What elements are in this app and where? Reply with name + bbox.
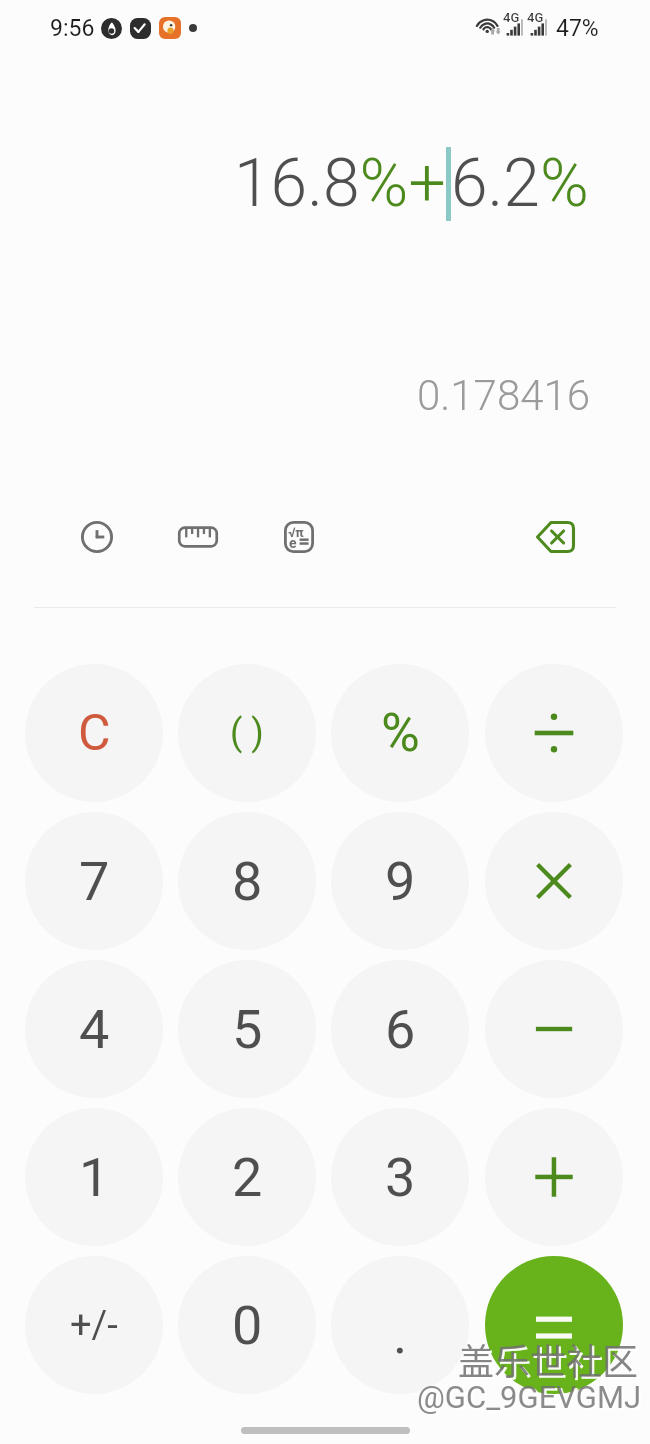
button[interactable]: Backspace xyxy=(523,505,587,569)
staticText: 16.8%+ xyxy=(234,145,446,222)
staticText: 5 xyxy=(232,998,263,1061)
staticText: √π xyxy=(288,525,304,540)
button[interactable]: Divide xyxy=(485,664,623,802)
button[interactable]: % xyxy=(331,664,469,802)
staticText: 盖乐世社区 xyxy=(458,1333,639,1385)
staticText: 6.2% xyxy=(451,145,589,222)
staticText: 9:56 xyxy=(50,15,95,42)
button[interactable]: 8 xyxy=(178,812,316,950)
staticText: @GC_9GEVGMJ xyxy=(417,1379,642,1415)
button[interactable]: 0 xyxy=(178,1256,316,1394)
staticText: e xyxy=(289,535,297,551)
staticText: 盖乐世社区 xyxy=(460,1335,641,1387)
staticText: 4 xyxy=(79,998,110,1061)
button[interactable]: 6 xyxy=(331,960,469,1098)
staticText: % xyxy=(381,702,420,764)
staticText: 3 xyxy=(385,1146,416,1209)
button[interactable]: ( ) xyxy=(178,664,316,802)
staticText: 1 xyxy=(79,1146,110,1209)
staticText: 47% xyxy=(556,15,599,42)
button[interactable]: +/- xyxy=(25,1256,163,1394)
button[interactable]: History xyxy=(63,505,127,569)
staticText: 2 xyxy=(232,1146,263,1209)
staticText: ( ) xyxy=(230,712,264,754)
button[interactable]: Add xyxy=(485,1108,623,1246)
staticText: 6 xyxy=(385,998,416,1061)
button[interactable]: Unit converter xyxy=(164,505,228,569)
staticText: @GC_9GEVGMJ xyxy=(419,1381,644,1417)
button[interactable]: Scientific calculator xyxy=(266,505,330,569)
staticText: 9 xyxy=(385,850,416,913)
button[interactable]: 2 xyxy=(178,1108,316,1246)
staticText: 0 xyxy=(232,1294,263,1357)
button[interactable]: 3 xyxy=(331,1108,469,1246)
button[interactable]: 1 xyxy=(25,1108,163,1246)
button[interactable]: Multiply xyxy=(485,812,623,950)
staticText: . xyxy=(393,1303,408,1366)
staticText: 8 xyxy=(232,850,263,913)
staticText: 0.178416 xyxy=(417,371,591,420)
staticText: 4G xyxy=(527,10,544,25)
button[interactable]: Equals xyxy=(485,1256,623,1394)
button[interactable]: Subtract xyxy=(485,960,623,1098)
staticText: C xyxy=(78,704,111,763)
button[interactable]: 5 xyxy=(178,960,316,1098)
button[interactable]: 9 xyxy=(331,812,469,950)
button[interactable]: 7 xyxy=(25,812,163,950)
staticText: 7 xyxy=(79,850,110,913)
staticText: +/- xyxy=(70,1303,118,1348)
button[interactable]: C xyxy=(25,664,163,802)
staticText: 4G xyxy=(503,10,520,25)
button[interactable]: . xyxy=(331,1256,469,1394)
button[interactable]: 4 xyxy=(25,960,163,1098)
